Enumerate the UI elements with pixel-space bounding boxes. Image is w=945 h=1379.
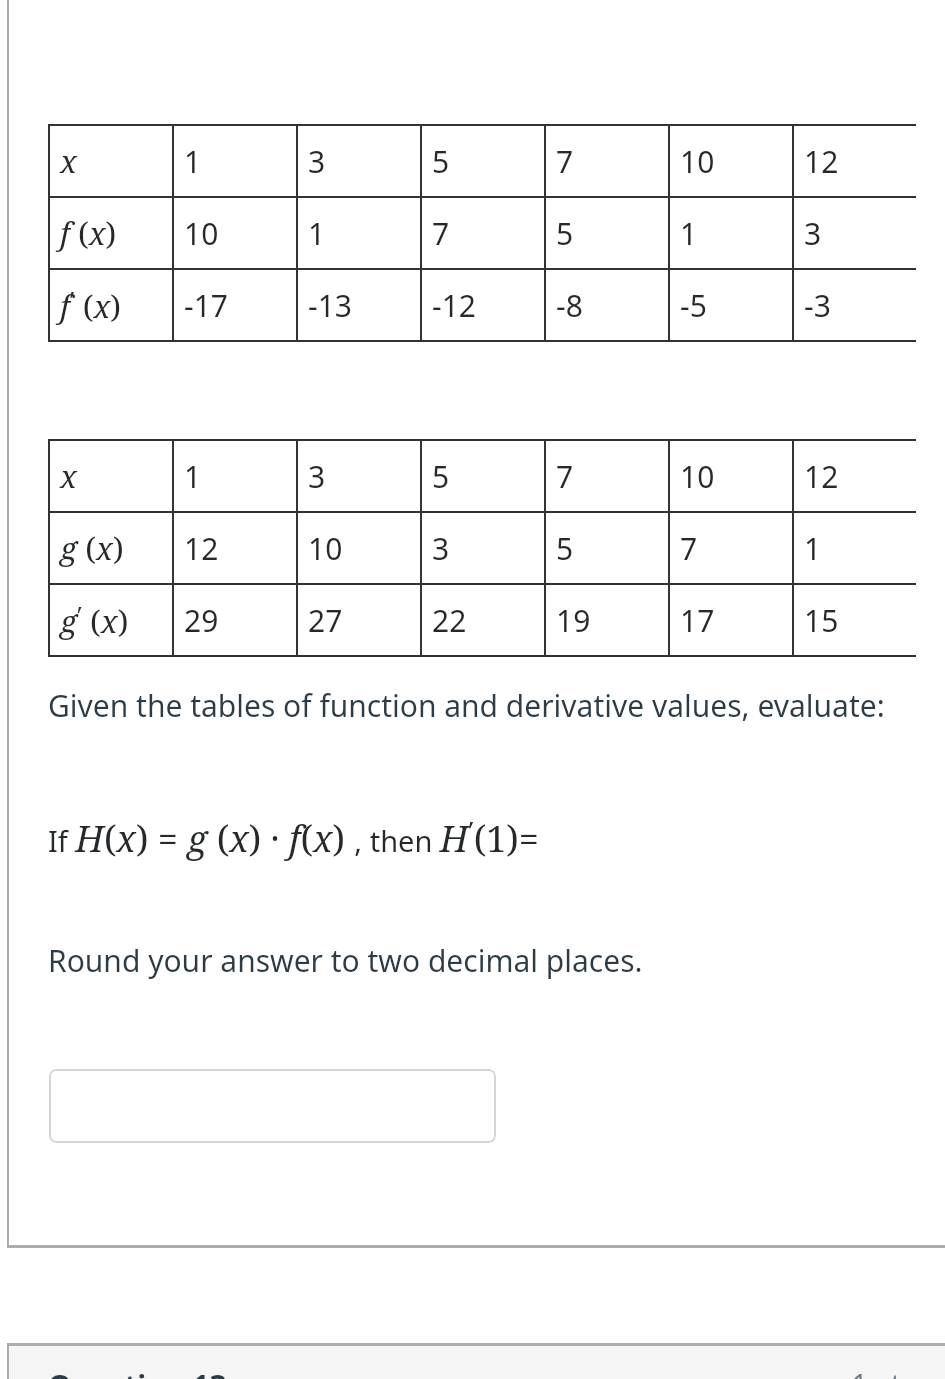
staticText: 3 bbox=[432, 528, 450, 569]
staticText: Question 13 bbox=[48, 1365, 227, 1379]
staticText: 7 bbox=[680, 528, 698, 569]
staticText: 3 bbox=[308, 456, 326, 497]
staticText: 29 bbox=[184, 600, 219, 641]
staticText: 1 bbox=[184, 141, 202, 182]
staticText: 1 bbox=[184, 456, 202, 497]
staticText: 7 bbox=[556, 456, 574, 497]
staticText: 1 pts bbox=[852, 1365, 914, 1379]
staticText: 15 bbox=[804, 600, 839, 641]
staticText: 1 bbox=[680, 213, 698, 254]
staticText: 3 bbox=[308, 141, 326, 182]
staticText: 7 bbox=[432, 213, 450, 254]
staticText: 1 bbox=[308, 213, 326, 254]
staticText: 5 bbox=[556, 528, 574, 569]
staticText: 5 bbox=[432, 456, 450, 497]
staticText: 17 bbox=[680, 600, 715, 641]
staticText: 5 bbox=[432, 141, 450, 182]
staticText: f′ (x) bbox=[60, 283, 122, 327]
staticText: -5 bbox=[680, 285, 707, 326]
staticText: 22 bbox=[432, 600, 467, 641]
staticText: 27 bbox=[308, 600, 343, 641]
staticText: 12 bbox=[184, 528, 219, 569]
staticText: 10 bbox=[184, 213, 219, 254]
staticText: 5 bbox=[556, 213, 574, 254]
staticText: -13 bbox=[308, 285, 352, 326]
staticText: 12 bbox=[804, 456, 839, 497]
staticText: 3 bbox=[804, 213, 822, 254]
staticText: Round your answer to two decimal places. bbox=[48, 940, 643, 981]
staticText: x bbox=[60, 140, 77, 182]
staticText: g′ (x) bbox=[60, 598, 129, 642]
staticText: -17 bbox=[184, 285, 228, 326]
staticText: 7 bbox=[556, 141, 574, 182]
staticText: -8 bbox=[556, 285, 583, 326]
staticText: 10 bbox=[308, 528, 343, 569]
staticText: 19 bbox=[556, 600, 591, 641]
staticText: Given the tables of function and derivat… bbox=[48, 685, 885, 726]
staticText: 10 bbox=[680, 456, 715, 497]
staticText: If H(x) = g (x) · f(x) , then H′(1)= bbox=[48, 812, 539, 862]
staticText: g (x) bbox=[60, 527, 124, 569]
staticText: -12 bbox=[432, 285, 476, 326]
staticText: 10 bbox=[680, 141, 715, 182]
staticText: 12 bbox=[804, 141, 839, 182]
staticText: 1 bbox=[804, 528, 822, 569]
button[interactable]: Answer input field bbox=[49, 1069, 496, 1143]
staticText: -3 bbox=[804, 285, 831, 326]
staticText: f (x) bbox=[60, 212, 117, 254]
staticText: x bbox=[60, 455, 77, 497]
